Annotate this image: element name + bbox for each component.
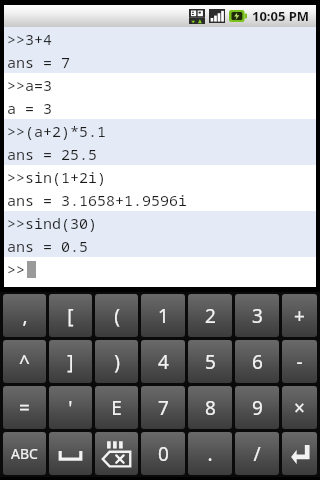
button[interactable]: = bbox=[3, 386, 46, 429]
staticText: >> bbox=[7, 259, 26, 279]
staticText: >>a=3 bbox=[7, 75, 53, 95]
button[interactable]: 3 bbox=[235, 294, 279, 337]
staticText: 5 bbox=[205, 349, 216, 375]
staticText: E bbox=[111, 395, 122, 421]
staticText: >>(a+2)*5.1 bbox=[7, 121, 107, 141]
staticText: - bbox=[296, 349, 303, 375]
button[interactable]: + bbox=[282, 294, 317, 337]
staticText: >>sin(1+2i) bbox=[7, 167, 107, 187]
button[interactable]: [ bbox=[49, 294, 92, 337]
button[interactable]: >>3+4 bbox=[4, 27, 316, 287]
staticText: × bbox=[294, 395, 305, 421]
staticText: ' bbox=[68, 395, 73, 421]
staticText: 7 bbox=[158, 395, 169, 421]
staticText: ans = 25.5 bbox=[7, 144, 98, 164]
button[interactable]: × bbox=[282, 386, 317, 429]
button[interactable]: - bbox=[282, 340, 317, 383]
staticText: 3 bbox=[252, 303, 263, 329]
button[interactable]: ^ bbox=[3, 340, 46, 383]
staticText: 1 bbox=[158, 303, 169, 329]
staticText: ans = 3.1658+1.9596i bbox=[7, 190, 188, 210]
button[interactable]: ] bbox=[49, 340, 92, 383]
button[interactable]: Enter bbox=[282, 432, 317, 475]
staticText: = bbox=[19, 395, 30, 421]
button[interactable]: Space bbox=[49, 432, 92, 475]
button[interactable]: , bbox=[3, 294, 46, 337]
staticText: + bbox=[294, 303, 305, 329]
button[interactable]: E bbox=[95, 386, 138, 429]
button[interactable]: 9 bbox=[235, 386, 279, 429]
staticText: 8 bbox=[205, 395, 216, 421]
staticText: 6 bbox=[252, 349, 263, 375]
staticText: / bbox=[253, 441, 261, 467]
staticText: >>3+4 bbox=[7, 29, 53, 49]
staticText: 10:05 PM bbox=[252, 7, 310, 25]
button[interactable]: 7 bbox=[141, 386, 185, 429]
button[interactable]: / bbox=[235, 432, 279, 475]
staticText: 0 bbox=[158, 441, 169, 467]
button[interactable]: 4 bbox=[141, 340, 185, 383]
button[interactable]: ) bbox=[95, 340, 138, 383]
button[interactable]: . bbox=[188, 432, 232, 475]
button[interactable]: 8 bbox=[188, 386, 232, 429]
button[interactable]: ' bbox=[49, 386, 92, 429]
staticText: [ bbox=[67, 303, 74, 329]
button[interactable]: 5 bbox=[188, 340, 232, 383]
staticText: a = 3 bbox=[7, 98, 53, 118]
staticText: ABC bbox=[11, 444, 38, 463]
staticText: ) bbox=[114, 349, 120, 375]
button[interactable]: 0 bbox=[141, 432, 185, 475]
staticText: ] bbox=[67, 349, 74, 375]
staticText: 2 bbox=[205, 303, 216, 329]
staticText: >>sind(30) bbox=[7, 213, 98, 233]
button[interactable]: Delete bbox=[95, 432, 138, 475]
staticText: ans = 7 bbox=[7, 52, 71, 72]
button[interactable]: 1 bbox=[141, 294, 185, 337]
staticText: ( bbox=[114, 303, 120, 329]
staticText: , bbox=[22, 303, 28, 329]
staticText: ^ bbox=[19, 349, 30, 375]
button[interactable]: 2 bbox=[188, 294, 232, 337]
button[interactable]: 6 bbox=[235, 340, 279, 383]
button[interactable]: ABC bbox=[3, 432, 46, 475]
staticText: 4 bbox=[158, 349, 169, 375]
staticText: . bbox=[207, 441, 213, 467]
staticText: ans = 0.5 bbox=[7, 236, 89, 256]
button[interactable]: ( bbox=[95, 294, 138, 337]
staticText: 9 bbox=[252, 395, 263, 421]
